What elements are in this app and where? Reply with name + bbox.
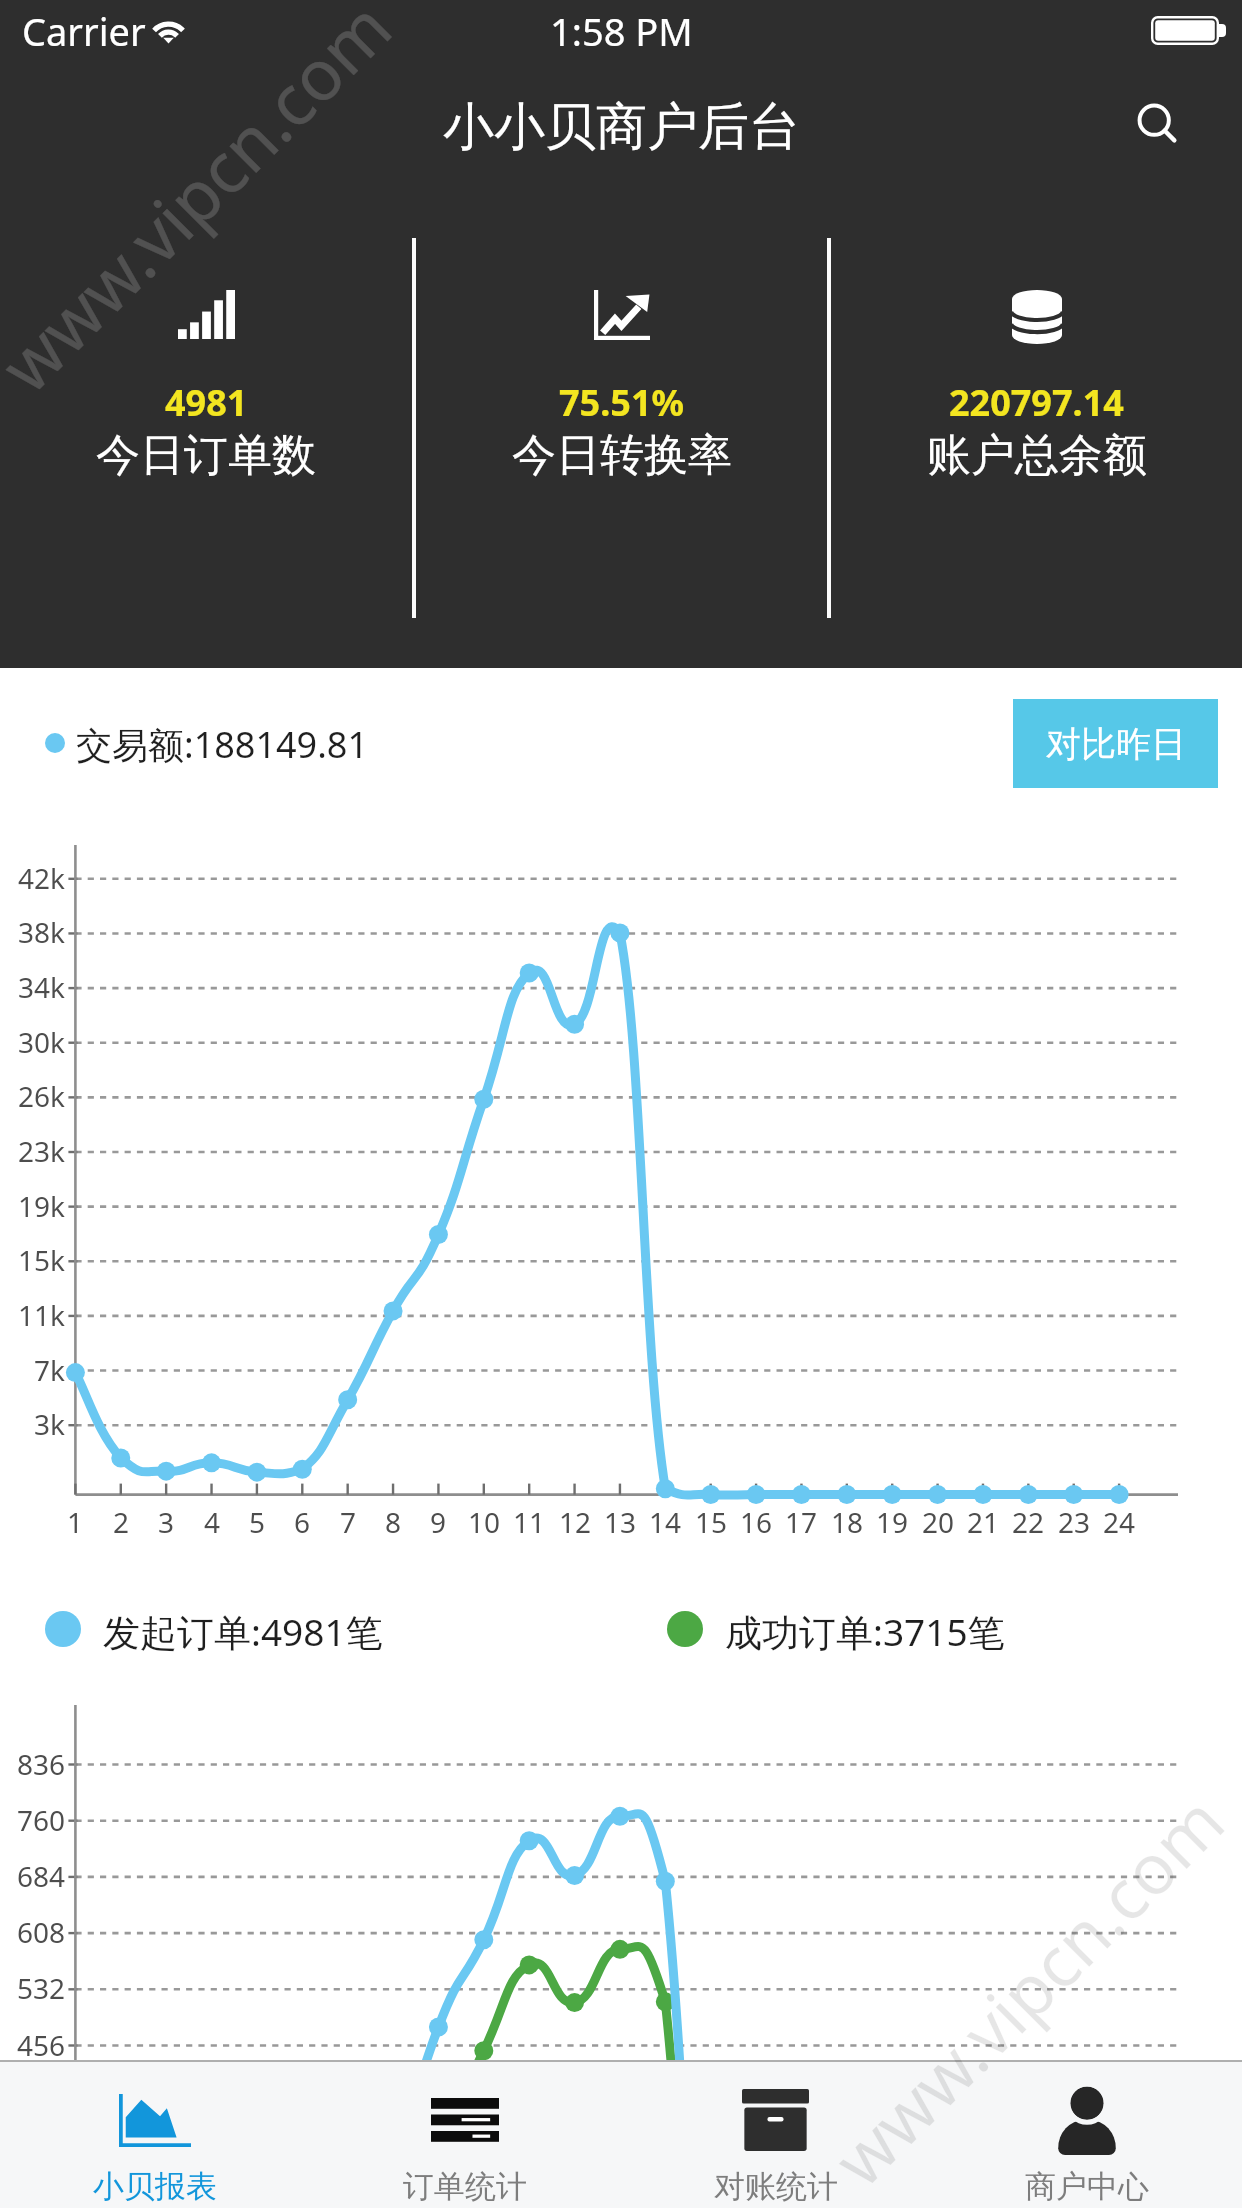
staticText: 7 — [326, 1503, 370, 1541]
staticText: 608 — [0, 1913, 65, 1951]
staticText: 23k — [0, 1132, 65, 1170]
staticText: 21 — [961, 1503, 1005, 1541]
staticText: 836 — [0, 1745, 65, 1783]
staticText: 成功订单:3715笔 — [725, 1606, 1005, 1652]
staticText: 34k — [0, 968, 65, 1006]
button[interactable]: 220797.14 — [831, 238, 1242, 618]
button[interactable]: 商户中心 — [931, 2062, 1242, 2208]
staticText: 19 — [870, 1503, 914, 1541]
button[interactable]: Search — [1118, 84, 1198, 164]
staticText: 订单统计 — [403, 2167, 527, 2206]
staticText: 15 — [689, 1503, 733, 1541]
staticText: 23 — [1052, 1503, 1096, 1541]
staticText: 1 — [53, 1503, 97, 1541]
staticText: 账户总余额 — [927, 428, 1147, 483]
staticText: 4 — [190, 1503, 234, 1541]
staticText: 对比昨日 — [1046, 722, 1186, 766]
staticText: 15k — [0, 1241, 65, 1279]
staticText: 11k — [0, 1296, 65, 1334]
staticText: 5 — [235, 1503, 279, 1541]
staticText: 26k — [0, 1077, 65, 1115]
staticText: 18 — [825, 1503, 869, 1541]
staticText: 商户中心 — [1025, 2167, 1149, 2206]
staticText: 17 — [779, 1503, 823, 1541]
button[interactable]: 75.51% — [416, 238, 827, 618]
staticText: 1:58 PM — [550, 5, 693, 57]
staticText: 532 — [0, 1969, 65, 2007]
staticText: 2 — [99, 1503, 143, 1541]
staticText: 24 — [1097, 1503, 1141, 1541]
staticText: 6 — [280, 1503, 324, 1541]
staticText: 7k — [0, 1351, 65, 1389]
staticText: 20 — [916, 1503, 960, 1541]
staticText: 3 — [144, 1503, 188, 1541]
staticText: 3k — [0, 1405, 65, 1443]
staticText: 220797.14 — [949, 378, 1124, 427]
staticText: 456 — [0, 2026, 65, 2064]
button[interactable]: 对账统计 — [620, 2062, 931, 2208]
staticText: 75.51% — [559, 378, 684, 427]
staticText: 14 — [643, 1503, 687, 1541]
staticText: 10 — [462, 1503, 506, 1541]
staticText: 22 — [1006, 1503, 1050, 1541]
staticText: 42k — [0, 859, 65, 897]
staticText: 今日订单数 — [96, 428, 316, 483]
button[interactable]: 对比昨日 — [1013, 699, 1218, 788]
staticText: 9 — [416, 1503, 460, 1541]
button[interactable]: 小贝报表 — [0, 2062, 310, 2208]
staticText: 小贝报表 — [93, 2167, 217, 2206]
staticText: 4981 — [165, 378, 248, 427]
staticText: 760 — [0, 1801, 65, 1839]
staticText: 38k — [0, 913, 65, 951]
button[interactable]: 订单统计 — [310, 2062, 620, 2208]
staticText: 684 — [0, 1857, 65, 1895]
staticText: www.vipcn.com — [812, 1774, 1242, 2205]
staticText: 12 — [553, 1503, 597, 1541]
staticText: 11 — [507, 1503, 551, 1541]
staticText: 16 — [734, 1503, 778, 1541]
staticText: 今日转换率 — [512, 428, 732, 483]
staticText: 8 — [371, 1503, 415, 1541]
staticText: 30k — [0, 1023, 65, 1061]
staticText: 13 — [598, 1503, 642, 1541]
staticText: 交易额:188149.81 — [76, 720, 369, 766]
staticText: 对账统计 — [714, 2167, 838, 2206]
staticText: www.vipcn.com — [0, 0, 410, 411]
staticText: 19k — [0, 1187, 65, 1225]
staticText: 小小贝商户后台 — [443, 95, 800, 159]
staticText: 发起订单:4981笔 — [103, 1606, 383, 1652]
staticText: Carrier — [22, 5, 146, 57]
button[interactable]: 4981 — [0, 238, 412, 618]
